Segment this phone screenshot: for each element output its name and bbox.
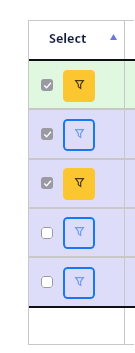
button[interactable]: Not selected (41, 276, 53, 288)
button[interactable]: Filter (63, 168, 95, 200)
button[interactable]: Not selected (41, 227, 53, 239)
button[interactable]: Selected (41, 79, 53, 91)
staticText: Select (49, 30, 87, 47)
button[interactable]: Filter (63, 119, 95, 151)
button[interactable]: Selected (41, 177, 53, 189)
button[interactable]: Filter (63, 70, 95, 102)
button[interactable]: Filter (63, 267, 95, 299)
button[interactable]: Filter (63, 217, 95, 249)
button[interactable]: Select (29, 20, 124, 59)
button[interactable]: Selected (41, 128, 53, 140)
